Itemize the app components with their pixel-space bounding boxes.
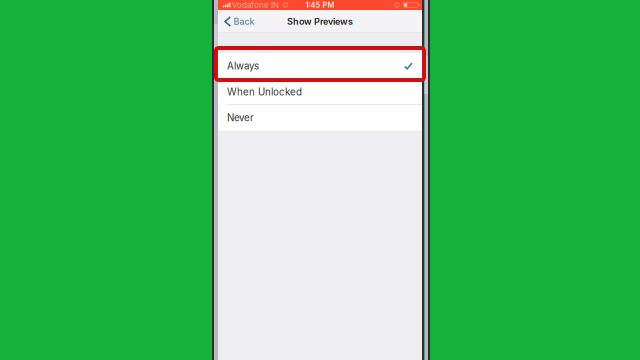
- staticText: When Unlocked: [227, 86, 302, 98]
- button[interactable]: Back: [218, 11, 262, 32]
- staticText: 1:45 PM: [305, 0, 334, 9]
- staticText: Vodafone IN: [232, 0, 279, 10]
- button[interactable]: When Unlocked: [218, 79, 422, 105]
- staticText: Back: [234, 16, 255, 27]
- button[interactable]: Always: [218, 53, 422, 79]
- staticText: Never: [227, 112, 254, 124]
- button[interactable]: Never: [218, 105, 422, 131]
- staticText: Always: [227, 60, 259, 72]
- staticText: Show Previews: [287, 16, 353, 27]
